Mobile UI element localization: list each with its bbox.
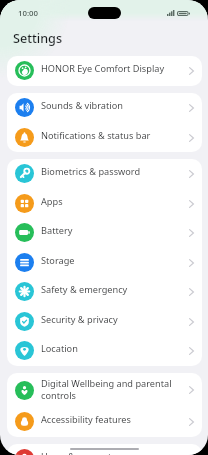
button[interactable]: HONOR Eye Comfort Display [7, 56, 202, 86]
staticText: Security & privacy [41, 313, 179, 326]
staticText: Biometrics & password [41, 165, 179, 178]
button[interactable]: Users & accounts [7, 444, 202, 455]
button[interactable]: Digital Wellbeing and parental controls [7, 373, 202, 407]
button[interactable]: Security & privacy [7, 307, 202, 337]
staticText: Users & accounts [41, 450, 179, 455]
staticText: 10:00 [18, 8, 38, 19]
staticText: HONOR Eye Comfort Display [41, 62, 179, 75]
button[interactable]: Sounds & vibration [7, 93, 202, 123]
button[interactable]: Apps [7, 189, 202, 219]
staticText: Sounds & vibration [41, 99, 179, 112]
button[interactable]: Notifications & status bar [7, 123, 202, 152]
staticText: Storage [41, 254, 179, 267]
staticText: Digital Wellbeing and parental controls [41, 377, 179, 401]
button[interactable]: Safety & emergency [7, 277, 202, 307]
staticText: Accessibility features [41, 413, 179, 426]
staticText: Apps [41, 195, 179, 208]
button[interactable]: Battery [7, 218, 202, 248]
staticText: Safety & emergency [41, 283, 179, 296]
staticText: Notifications & status bar [41, 129, 179, 142]
button[interactable]: Biometrics & password [7, 159, 202, 189]
button[interactable]: Accessibility features [7, 407, 202, 437]
staticText: Location [41, 342, 179, 355]
staticText: Battery [41, 224, 179, 237]
button[interactable]: Location [7, 336, 202, 366]
button[interactable]: Storage [7, 248, 202, 278]
staticText: Settings [13, 30, 63, 47]
